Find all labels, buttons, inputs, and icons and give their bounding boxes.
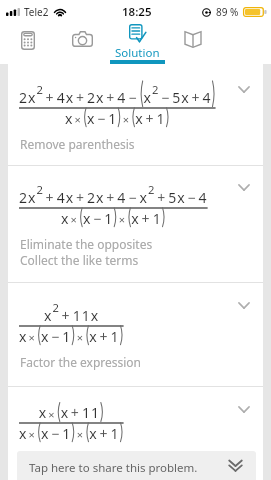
button[interactable]: Expand step: [228, 292, 260, 318]
staticText: Tele2: [24, 5, 49, 19]
button[interactable]: Eliminate the opposites: [8, 166, 263, 282]
button[interactable]: Expand step: [8, 387, 263, 451]
staticText: Solution: [115, 45, 160, 61]
staticText: Eliminate the opposites: [20, 236, 153, 252]
button[interactable]: Calculator: [0, 22, 55, 64]
staticText: 18:25: [122, 4, 152, 20]
staticText: Remove parenthesis: [20, 136, 135, 152]
button[interactable]: Tap here to share this problem.: [17, 451, 256, 480]
button[interactable]: Expand step: [228, 396, 260, 422]
button[interactable]: Library: [165, 22, 220, 64]
staticText: Factor the expression: [20, 354, 142, 370]
staticText: 89 %: [216, 5, 239, 19]
staticText: Collect the like terms: [20, 252, 139, 268]
button[interactable]: Expand step: [228, 76, 260, 102]
staticText: Tap here to share this problem.: [29, 460, 198, 476]
button[interactable]: Factor the expression: [8, 283, 263, 386]
button[interactable]: Camera: [55, 22, 110, 64]
other: Expand: [228, 459, 243, 472]
button[interactable]: Solution: [110, 22, 165, 64]
button[interactable]: Expand step: [228, 174, 260, 200]
button[interactable]: Remove parenthesis: [8, 64, 263, 165]
